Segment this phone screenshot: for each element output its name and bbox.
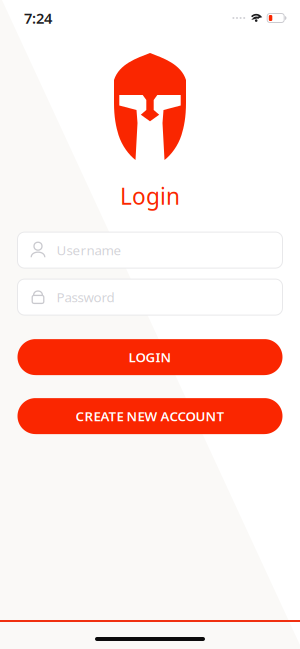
staticText: Password xyxy=(56,288,114,306)
staticText: CREATE NEW ACCOUNT xyxy=(75,407,224,425)
button[interactable]: CREATE NEW ACCOUNT xyxy=(17,398,282,434)
staticText: 7:24 xyxy=(24,8,52,28)
button[interactable]: LOGIN xyxy=(17,339,282,375)
staticText: Username xyxy=(56,241,121,259)
staticText: LOGIN xyxy=(128,348,171,366)
staticText: Login xyxy=(120,181,180,211)
button[interactable]: Password xyxy=(17,279,282,315)
button[interactable]: Username xyxy=(17,232,282,268)
